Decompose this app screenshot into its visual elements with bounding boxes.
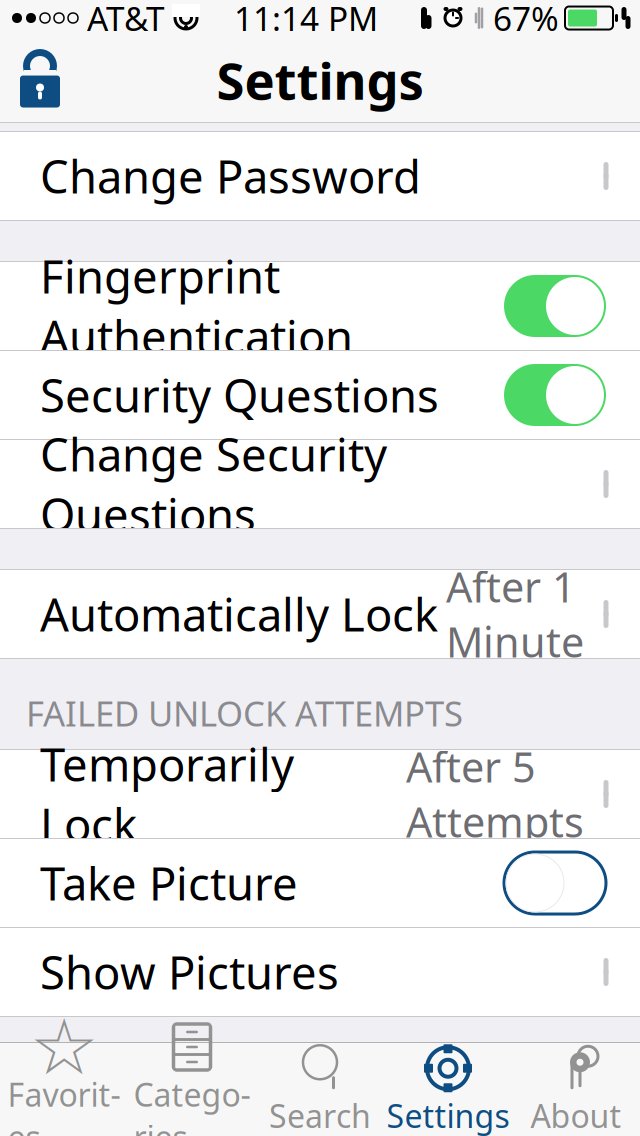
staticText: After 1 Minute — [446, 559, 584, 669]
staticText: Favorites — [7, 1073, 120, 1136]
staticText: Search — [269, 1094, 371, 1136]
staticText: About — [530, 1094, 621, 1136]
button[interactable]: About — [512, 1043, 640, 1136]
button[interactable]: Settings — [384, 1043, 512, 1136]
staticText: Automatically Lock — [40, 584, 438, 644]
staticText: FAILED UNLOCK ATTEMPTS — [26, 690, 463, 736]
button[interactable]: Change Password — [0, 132, 640, 220]
staticText: After 5 Attempts — [406, 739, 584, 849]
staticText: Settings — [216, 46, 423, 114]
button[interactable]: Lock — [0, 51, 80, 109]
staticText: ☆ — [29, 1003, 98, 1091]
button[interactable]: Show Pictures — [0, 928, 640, 1016]
button[interactable]: Take Picture — [0, 839, 640, 927]
button[interactable]: ☆ — [0, 1043, 128, 1136]
button[interactable]: Fingerprint Authentication — [0, 262, 640, 350]
staticText: Show Pictures — [40, 942, 339, 1002]
staticText: Temporarily Lock — [40, 734, 294, 854]
button[interactable]: Search — [256, 1043, 384, 1136]
button[interactable]: Temporarily Lock — [0, 750, 640, 838]
staticText: 11:14 PM — [234, 0, 378, 40]
staticText: AT&T — [87, 0, 165, 40]
staticText: Change Security Questions — [40, 424, 387, 544]
staticText: Change Password — [40, 146, 421, 206]
button[interactable]: Security Questions — [0, 351, 640, 439]
staticText: Take Picture — [40, 853, 298, 913]
button[interactable]: Automatically Lock — [0, 570, 640, 658]
staticText: 67% — [493, 0, 559, 40]
staticText: Settings — [386, 1094, 509, 1136]
staticText: Categories — [133, 1073, 250, 1136]
staticText: Security Questions — [40, 365, 439, 425]
button[interactable]: Change Security Questions — [0, 440, 640, 528]
staticText: Fingerprint Authentication — [40, 246, 353, 366]
button[interactable]: Categories — [128, 1043, 256, 1136]
